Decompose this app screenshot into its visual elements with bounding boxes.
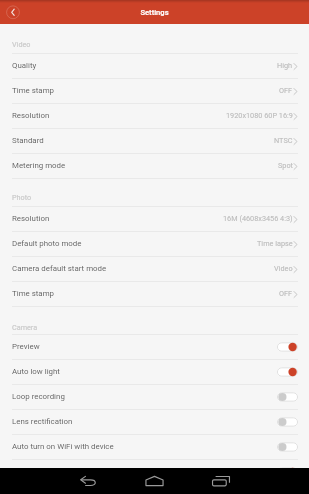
staticText: Time stamp [12, 86, 54, 95]
staticText: Camera default start mode [12, 264, 107, 273]
staticText: Time lapse [257, 239, 293, 248]
button[interactable]: Standard [0, 129, 309, 154]
button[interactable]: On [277, 466, 298, 468]
button[interactable]: Loop recording [0, 385, 309, 410]
staticText: Time stamp [12, 289, 54, 298]
staticText: Settings [140, 8, 169, 17]
button[interactable]: Preview [0, 335, 309, 360]
staticText: Resolution [12, 214, 50, 223]
button[interactable]: On [277, 366, 298, 378]
button[interactable]: Quality [0, 54, 309, 79]
staticText: Photo [12, 193, 32, 201]
staticText: 1920x1080 60P 16:9 [226, 111, 293, 120]
button[interactable]: Resolution [0, 104, 309, 129]
button[interactable]: Auto turn on WiFi with device [0, 435, 309, 460]
button[interactable]: Resolution [0, 207, 309, 232]
button[interactable]: Off [277, 441, 298, 453]
button[interactable]: Home [132, 468, 177, 494]
staticText: Lens rectification [12, 417, 73, 426]
staticText: NTSC [274, 136, 293, 145]
staticText: Metering mode [12, 161, 66, 170]
staticText: Quality [12, 61, 37, 70]
button[interactable]: Metering mode [0, 154, 309, 179]
button[interactable]: Auto low light [0, 360, 309, 385]
staticText: 16M (4608x3456 4:3) [223, 214, 293, 223]
staticText: Auto low light [12, 367, 60, 376]
button[interactable]: Time stamp [0, 79, 309, 104]
staticText: Spot [278, 161, 293, 170]
staticText: Standard [12, 136, 44, 145]
staticText: OFF [279, 289, 293, 298]
staticText: Default photo mode [12, 239, 82, 248]
staticText: Video [12, 40, 31, 48]
staticText: Video [274, 264, 293, 273]
button[interactable]: Back [4, 3, 22, 21]
button[interactable]: Recent apps [198, 468, 243, 494]
staticText: OFF [279, 86, 293, 95]
button[interactable]: Lens rectification [0, 410, 309, 435]
staticText: Auto turn on WiFi with device [12, 442, 114, 451]
staticText: Resolution [12, 111, 50, 120]
staticText: Camera [12, 323, 38, 331]
button[interactable]: Default photo mode [0, 232, 309, 257]
button[interactable]: Back [66, 468, 111, 494]
staticText: Loop recording [12, 392, 65, 401]
button[interactable]: On [277, 341, 298, 353]
staticText: High [277, 61, 293, 70]
button[interactable]: Off [277, 391, 298, 403]
button[interactable]: Off [277, 416, 298, 428]
staticText: Preview [12, 342, 40, 351]
button[interactable]: Camera default start mode [0, 257, 309, 282]
button[interactable]: Time stamp [0, 282, 309, 307]
